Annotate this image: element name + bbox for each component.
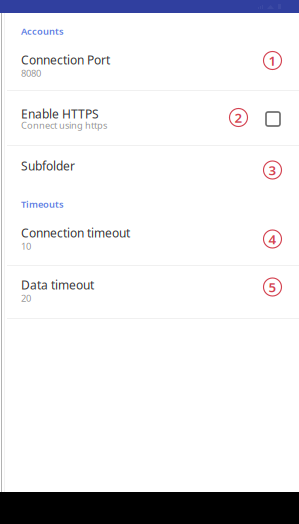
staticText: Accounts [21, 25, 64, 37]
staticText: Connect using https [21, 119, 107, 131]
staticText: Data timeout [21, 277, 94, 293]
button[interactable]: Enable HTTPS [0, 91, 299, 145]
button[interactable]: Annotation 2 [229, 108, 247, 126]
staticText: 8080 [21, 67, 41, 79]
staticText: 5 [268, 278, 276, 296]
staticText: 10 [21, 240, 31, 252]
staticText: 20 [21, 292, 31, 304]
button[interactable]: Connection timeout [0, 217, 299, 265]
button[interactable]: Annotation 3 [263, 161, 281, 179]
staticText: 2 [234, 109, 242, 126]
staticText: Timeouts [21, 198, 64, 210]
staticText: Subfolder [21, 158, 75, 174]
button[interactable]: Annotation 5 [263, 278, 281, 296]
staticText: 1 [268, 52, 276, 69]
button[interactable]: Annotation 1 [263, 51, 281, 69]
staticText: Enable HTTPS [21, 106, 99, 122]
staticText: 4 [268, 230, 276, 248]
button[interactable]: Subfolder [0, 146, 299, 181]
staticText: 3 [268, 161, 276, 179]
button[interactable]: Data timeout [0, 266, 299, 317]
button[interactable]: Connection Port [0, 44, 299, 90]
staticText: Connection Port [21, 52, 110, 68]
button[interactable]: Annotation 4 [263, 230, 281, 248]
staticText: Connection timeout [21, 225, 130, 241]
